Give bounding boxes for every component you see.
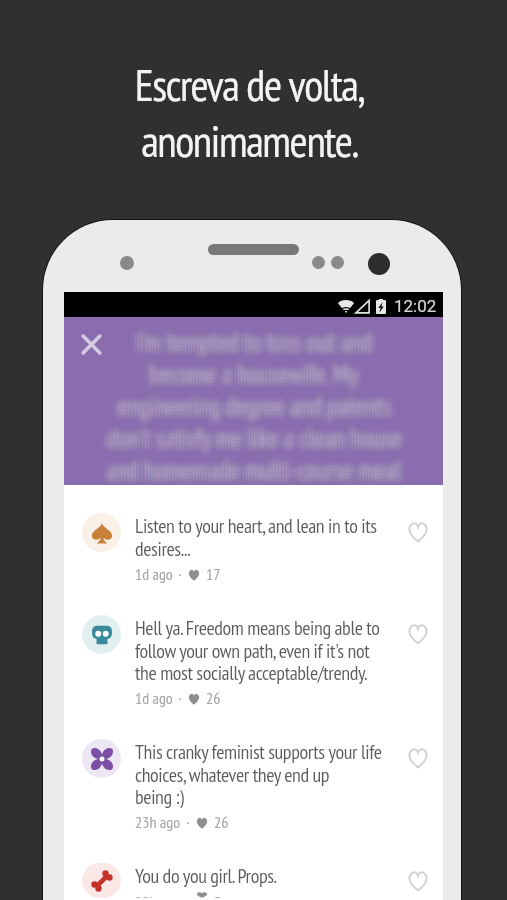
button[interactable]: Listen to your heart, and lean in to its… [64, 485, 443, 587]
staticText: I'm tempted to toss out and [138, 332, 374, 364]
staticText: become a housewife. My [149, 354, 358, 386]
staticText: don't satisfy me like a clean house [111, 418, 407, 450]
staticText: become a housewife. My [152, 352, 361, 384]
staticText: engineering degree and patents [110, 396, 384, 428]
staticText: engineering degree and patents [117, 383, 391, 415]
staticText: and homemade multi-course meal [103, 450, 398, 482]
button[interactable]: Like [399, 739, 437, 777]
staticText: and homemade multi-course meal [112, 460, 407, 492]
staticText: don't satisfy me like a clean house [114, 418, 410, 450]
staticText: don't satisfy me like a clean house [106, 415, 402, 447]
staticText: and homemade multi-course meal [102, 456, 397, 488]
staticText: engineering degree and patents [113, 398, 387, 430]
staticText: engineering degree and patents [117, 392, 391, 424]
button[interactable]: This cranky feminist supports your life … [64, 711, 443, 835]
button[interactable]: Like [399, 615, 437, 653]
staticText: and homemade multi-course meal [105, 462, 400, 494]
staticText: engineering degree and patents [110, 392, 384, 424]
staticText: don't satisfy me like a clean house [109, 427, 405, 459]
button[interactable]: Close [71, 324, 111, 364]
staticText: become a housewife. My [142, 364, 351, 396]
staticText: and homemade multi-course meal [108, 454, 403, 486]
staticText: engineering degree and patents [125, 387, 399, 419]
staticText: and homemade multi-course meal [102, 454, 397, 486]
staticText: become a housewife. My [154, 360, 363, 392]
staticText: engineering degree and patents [114, 384, 388, 416]
staticText: don't satisfy me like a clean house [114, 427, 410, 459]
staticText: become a housewife. My [151, 364, 360, 396]
button[interactable]: Like [399, 863, 437, 898]
staticText: engineering degree and patents [108, 393, 382, 425]
staticText: engineering degree and patents [117, 396, 391, 428]
staticText: don't satisfy me like a clean house [106, 413, 402, 445]
staticText: don't satisfy me like a clean house [109, 416, 405, 448]
staticText: become a housewife. My [152, 366, 361, 398]
staticText: engineering degree and patents [108, 395, 382, 427]
staticText: engineering degree and patents [116, 395, 390, 427]
staticText: and homemade multi-course meal [102, 445, 397, 477]
staticText: I'm tempted to toss out and [139, 320, 375, 352]
staticText: engineering degree and patents [126, 387, 400, 419]
staticText: and homemade multi-course meal [114, 460, 409, 492]
staticText: engineering degree and patents [116, 392, 390, 424]
staticText: and homemade multi-course meal [111, 459, 406, 491]
staticText: and homemade multi-course meal [106, 448, 401, 480]
staticText: engineering degree and patents [122, 398, 396, 430]
staticText: and homemade multi-course meal [105, 463, 400, 495]
staticText: and homemade multi-course meal [114, 448, 409, 480]
staticText: and homemade multi-course meal [115, 453, 410, 485]
staticText: and homemade multi-course meal [109, 462, 404, 494]
staticText: I'm tempted to toss out and [132, 326, 368, 358]
staticText: engineering degree and patents [120, 393, 394, 425]
button[interactable]: You do you girl. Props. [64, 835, 443, 900]
staticText: Escreva de volta, anonimamente. [0, 56, 503, 169]
staticText: engineering degree and patents [111, 390, 385, 422]
staticText: and homemade multi-course meal [109, 451, 404, 483]
staticText: I'm tempted to toss out and [138, 319, 374, 351]
staticText: become a housewife. My [148, 354, 357, 386]
staticText: engineering degree and patents [113, 389, 387, 421]
staticText: engineering degree and patents [122, 386, 396, 418]
staticText: I'm tempted to toss out and [139, 331, 375, 363]
staticText: become a housewife. My [152, 358, 361, 390]
staticText: I'm tempted to toss out and [133, 322, 369, 354]
staticText: don't satisfy me like a clean house [111, 427, 407, 459]
staticText: I'm tempted to toss out and [130, 334, 366, 366]
staticText: don't satisfy me like a clean house [106, 421, 402, 453]
staticText: and homemade multi-course meal [111, 454, 406, 486]
staticText: engineering degree and patents [113, 381, 387, 413]
staticText: engineering degree and patents [114, 390, 388, 422]
staticText: become a housewife. My [149, 367, 358, 399]
staticText: engineering degree and patents [116, 387, 390, 419]
staticText: I'm tempted to toss out and [135, 322, 371, 354]
button[interactable]: Hell ya. Freedom means being able to fol… [64, 587, 443, 711]
staticText: and homemade multi-course meal [99, 456, 394, 488]
staticText: become a housewife. My [151, 363, 360, 395]
staticText: engineering degree and patents [111, 396, 385, 428]
staticText: don't satisfy me like a clean house [115, 418, 411, 450]
staticText: I'm tempted to toss out and [132, 323, 368, 355]
staticText: don't satisfy me like a clean house [111, 421, 407, 453]
staticText: engineering degree and patents [125, 393, 399, 425]
staticText: and homemade multi-course meal [102, 460, 397, 492]
staticText: don't satisfy me like a clean house [102, 427, 398, 459]
staticText: engineering degree and patents [116, 398, 390, 430]
staticText: I'm tempted to toss out and [130, 325, 366, 357]
staticText: become a housewife. My [158, 358, 367, 390]
staticText: I'm tempted to toss out and [129, 332, 365, 364]
staticText: 22h ago [135, 892, 181, 898]
staticText: don't satisfy me like a clean house [108, 430, 404, 462]
staticText: I'm tempted to toss out and [142, 319, 378, 351]
staticText: engineering degree and patents [120, 389, 394, 421]
staticText: become a housewife. My [151, 361, 360, 393]
staticText: I'm tempted to toss out and [130, 322, 366, 354]
staticText: engineering degree and patents [110, 389, 384, 421]
staticText: become a housewife. My [148, 355, 357, 387]
staticText: don't satisfy me like a clean house [97, 422, 393, 454]
staticText: become a housewife. My [149, 355, 358, 387]
staticText: I'm tempted to toss out and [138, 320, 374, 352]
staticText: I'm tempted to toss out and [139, 334, 375, 366]
button[interactable]: Like [399, 513, 437, 551]
staticText: become a housewife. My [151, 357, 360, 389]
staticText: I'm tempted to toss out and [142, 331, 378, 363]
